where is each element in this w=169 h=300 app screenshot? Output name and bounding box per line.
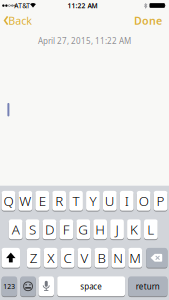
staticText: S — [29, 220, 36, 238]
staticText: Z — [30, 249, 38, 267]
staticText: X — [47, 249, 54, 267]
button[interactable]: Return — [128, 276, 167, 296]
staticText: H — [95, 220, 105, 238]
staticText: M — [129, 249, 141, 267]
button[interactable]: X — [44, 248, 57, 268]
staticText: K — [130, 220, 138, 238]
staticText: return — [136, 281, 160, 292]
staticText: R — [55, 192, 63, 210]
button[interactable]: Shift — [2, 248, 20, 268]
staticText: W — [19, 192, 31, 210]
button[interactable]: O — [137, 191, 150, 211]
button[interactable]: I — [120, 191, 134, 211]
button[interactable]: C — [61, 248, 74, 268]
button[interactable]: P — [154, 191, 167, 211]
button[interactable]: T — [69, 191, 83, 211]
button[interactable]: Space — [57, 276, 125, 296]
button[interactable]: V — [78, 248, 91, 268]
staticText: Q — [3, 192, 13, 210]
staticText: Back — [8, 13, 32, 28]
button[interactable]: B — [94, 248, 108, 268]
staticText: D — [45, 220, 54, 238]
button[interactable]: U — [103, 191, 117, 211]
staticText: V — [80, 249, 88, 267]
button[interactable]: Done — [131, 10, 165, 31]
staticText: E — [39, 192, 46, 210]
staticText: N — [113, 249, 123, 267]
staticText: U — [105, 192, 115, 210]
staticText: C — [64, 249, 72, 267]
staticText: P — [156, 192, 164, 210]
staticText: T — [72, 192, 79, 210]
staticText: F — [63, 220, 70, 238]
staticText: A — [12, 220, 20, 238]
button[interactable]: A — [9, 219, 22, 239]
button[interactable]: D — [43, 219, 56, 239]
staticText: J — [116, 220, 119, 238]
button[interactable]: Emoji — [20, 276, 36, 296]
staticText: Done — [134, 13, 162, 28]
button[interactable]: L — [144, 219, 158, 239]
staticText: April 27, 2015, 11:22 AM — [38, 36, 131, 46]
button[interactable]: Y — [86, 191, 100, 211]
button[interactable]: M — [128, 248, 142, 268]
staticText: L — [147, 220, 154, 238]
staticText: space — [80, 281, 102, 292]
button[interactable]: E — [35, 191, 49, 211]
staticText: O — [139, 192, 149, 210]
button[interactable]: F — [59, 219, 73, 239]
staticText: Y — [89, 192, 96, 210]
button[interactable]: K — [127, 219, 141, 239]
button[interactable]: Q — [2, 191, 15, 211]
staticText: G — [78, 220, 88, 238]
button[interactable]: R — [52, 191, 66, 211]
staticText: I — [125, 192, 129, 210]
staticText: AT&T — [14, 1, 30, 10]
button[interactable]: Delete — [146, 248, 167, 268]
button[interactable]: J — [110, 219, 124, 239]
staticText: 11:22 AM — [67, 1, 97, 10]
staticText: B — [97, 249, 105, 267]
button[interactable]: Numbers — [2, 276, 17, 296]
button[interactable]: W — [18, 191, 32, 211]
button[interactable]: Dictate — [38, 276, 54, 296]
button[interactable]: N — [111, 248, 125, 268]
button[interactable]: G — [76, 219, 90, 239]
button[interactable]: S — [26, 219, 39, 239]
staticText: 123 — [3, 282, 15, 291]
button[interactable]: H — [93, 219, 107, 239]
button[interactable]: Back — [4, 10, 38, 31]
button[interactable]: Z — [27, 248, 41, 268]
